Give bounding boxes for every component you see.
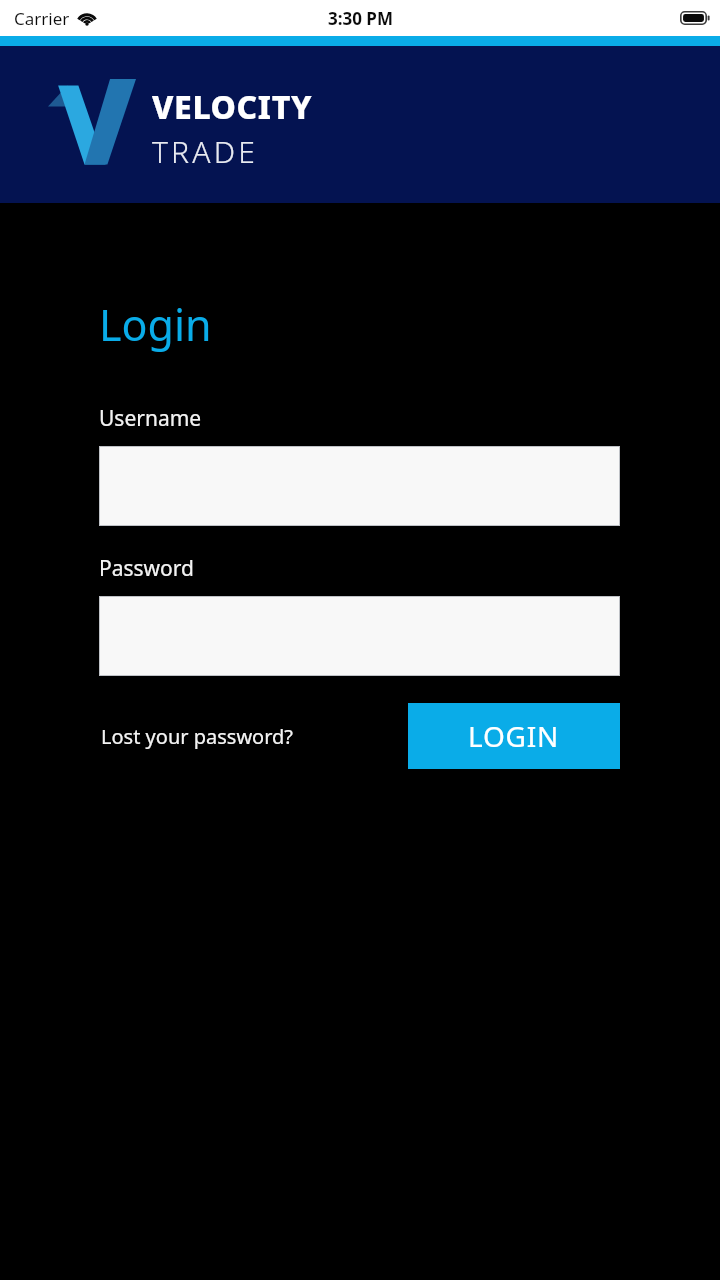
button[interactable] <box>99 446 620 526</box>
button[interactable] <box>99 596 620 676</box>
staticText: Login <box>99 295 212 354</box>
staticText: VELOCITY <box>152 85 313 129</box>
staticText: Username <box>99 404 202 433</box>
button[interactable]: Lost your password? <box>99 717 296 756</box>
staticText: Lost your password? <box>101 723 294 750</box>
button[interactable]: LOGIN <box>408 703 620 769</box>
staticText: Password <box>99 554 194 583</box>
staticText: 3:30 PM <box>328 7 393 30</box>
staticText: TRADE <box>152 131 259 172</box>
staticText: LOGIN <box>468 717 560 755</box>
staticText: Carrier <box>14 7 70 30</box>
